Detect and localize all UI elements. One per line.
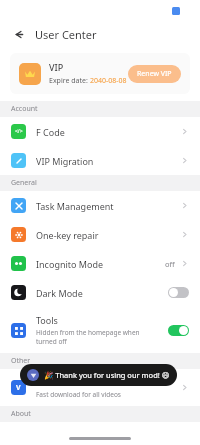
staticText: F Code: [36, 126, 65, 138]
staticText: </>: [15, 128, 23, 135]
staticText: Incognito Mode: [36, 258, 104, 270]
staticText: One-key repair: [36, 229, 99, 241]
button[interactable]: Renew VIP: [128, 65, 181, 83]
staticText: Tools: [36, 314, 58, 326]
staticText: VIP Migration: [36, 155, 94, 167]
staticText: 🎉 Thank you for using our mod! 😄: [44, 370, 170, 380]
button[interactable]: </>: [0, 117, 200, 146]
button[interactable]: Dark Mode: [0, 278, 200, 307]
button[interactable]: Task Management: [0, 191, 200, 220]
button[interactable]: Back: [9, 25, 27, 43]
staticText: Fast download for all videos: [36, 390, 121, 399]
staticText: About: [11, 409, 31, 419]
staticText: VIP: [49, 61, 64, 73]
button[interactable]: VIP: [10, 53, 190, 94]
staticText: Hidden from the homepage when turned off: [36, 328, 140, 346]
button[interactable]: Dark Mode toggle: [168, 287, 189, 298]
button[interactable]: V: [0, 369, 200, 406]
staticText: Task Management: [36, 200, 114, 212]
staticText: off: [165, 259, 175, 269]
staticText: Dark Mode: [36, 287, 83, 299]
button[interactable]: VIP Migration: [0, 146, 200, 175]
button[interactable]: Tools toggle: [168, 325, 189, 336]
staticText: General: [11, 178, 37, 188]
staticText: 2040-08-08: [90, 76, 127, 86]
button[interactable]: Incognito Mode: [0, 249, 200, 278]
staticText: Other: [11, 356, 31, 366]
staticText: Renew VIP: [137, 69, 172, 79]
staticText: Xvid: [36, 376, 54, 388]
staticText: User Center: [35, 27, 97, 42]
staticText: V: [16, 383, 21, 393]
button[interactable]: 🎉 Thank you for using our mod! 😄: [20, 364, 177, 386]
staticText: Account: [11, 104, 38, 114]
staticText: Expire date:: [49, 76, 90, 86]
button[interactable]: Tools: [0, 307, 200, 353]
button[interactable]: One-key repair: [0, 220, 200, 249]
